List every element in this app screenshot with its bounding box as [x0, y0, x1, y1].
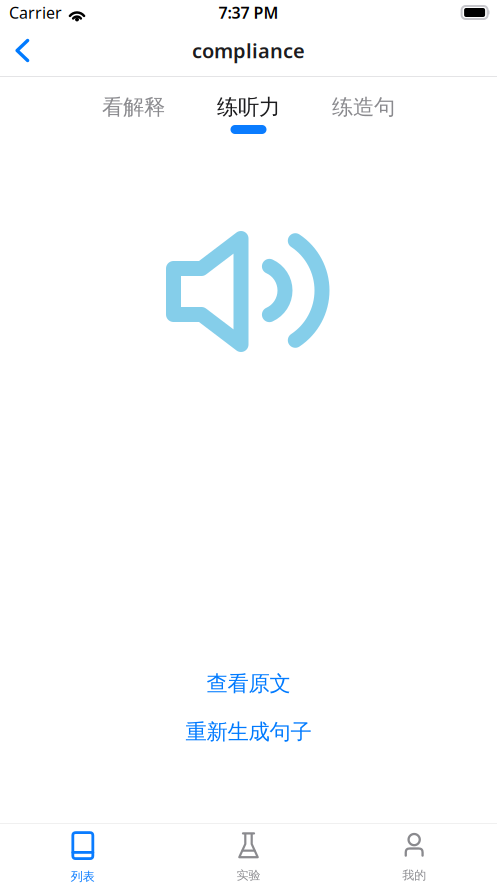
staticText: 练听力: [217, 94, 280, 120]
button[interactable]: 练听力: [191, 94, 306, 134]
staticText: 列表: [71, 869, 95, 883]
button[interactable]: 查看原文: [206, 671, 290, 697]
staticText: 看解释: [102, 94, 165, 120]
button[interactable]: 看解释: [76, 94, 191, 134]
staticText: Carrier: [9, 2, 62, 23]
button[interactable]: 练造句: [306, 94, 421, 134]
button[interactable]: Play pronunciation: [165, 231, 331, 352]
staticText: 查看原文: [206, 671, 290, 697]
button[interactable]: 实验: [166, 824, 331, 883]
staticText: 我的: [402, 868, 426, 883]
staticText: 7:37 PM: [218, 2, 278, 23]
button[interactable]: 列表: [0, 824, 166, 883]
button[interactable]: 重新生成句子: [185, 719, 311, 745]
staticText: 实验: [236, 868, 260, 883]
staticText: 练造句: [332, 94, 395, 120]
button[interactable]: Back: [0, 29, 44, 72]
staticText: compliance: [192, 37, 305, 64]
button[interactable]: 我的: [331, 824, 497, 883]
staticText: 重新生成句子: [185, 719, 311, 745]
